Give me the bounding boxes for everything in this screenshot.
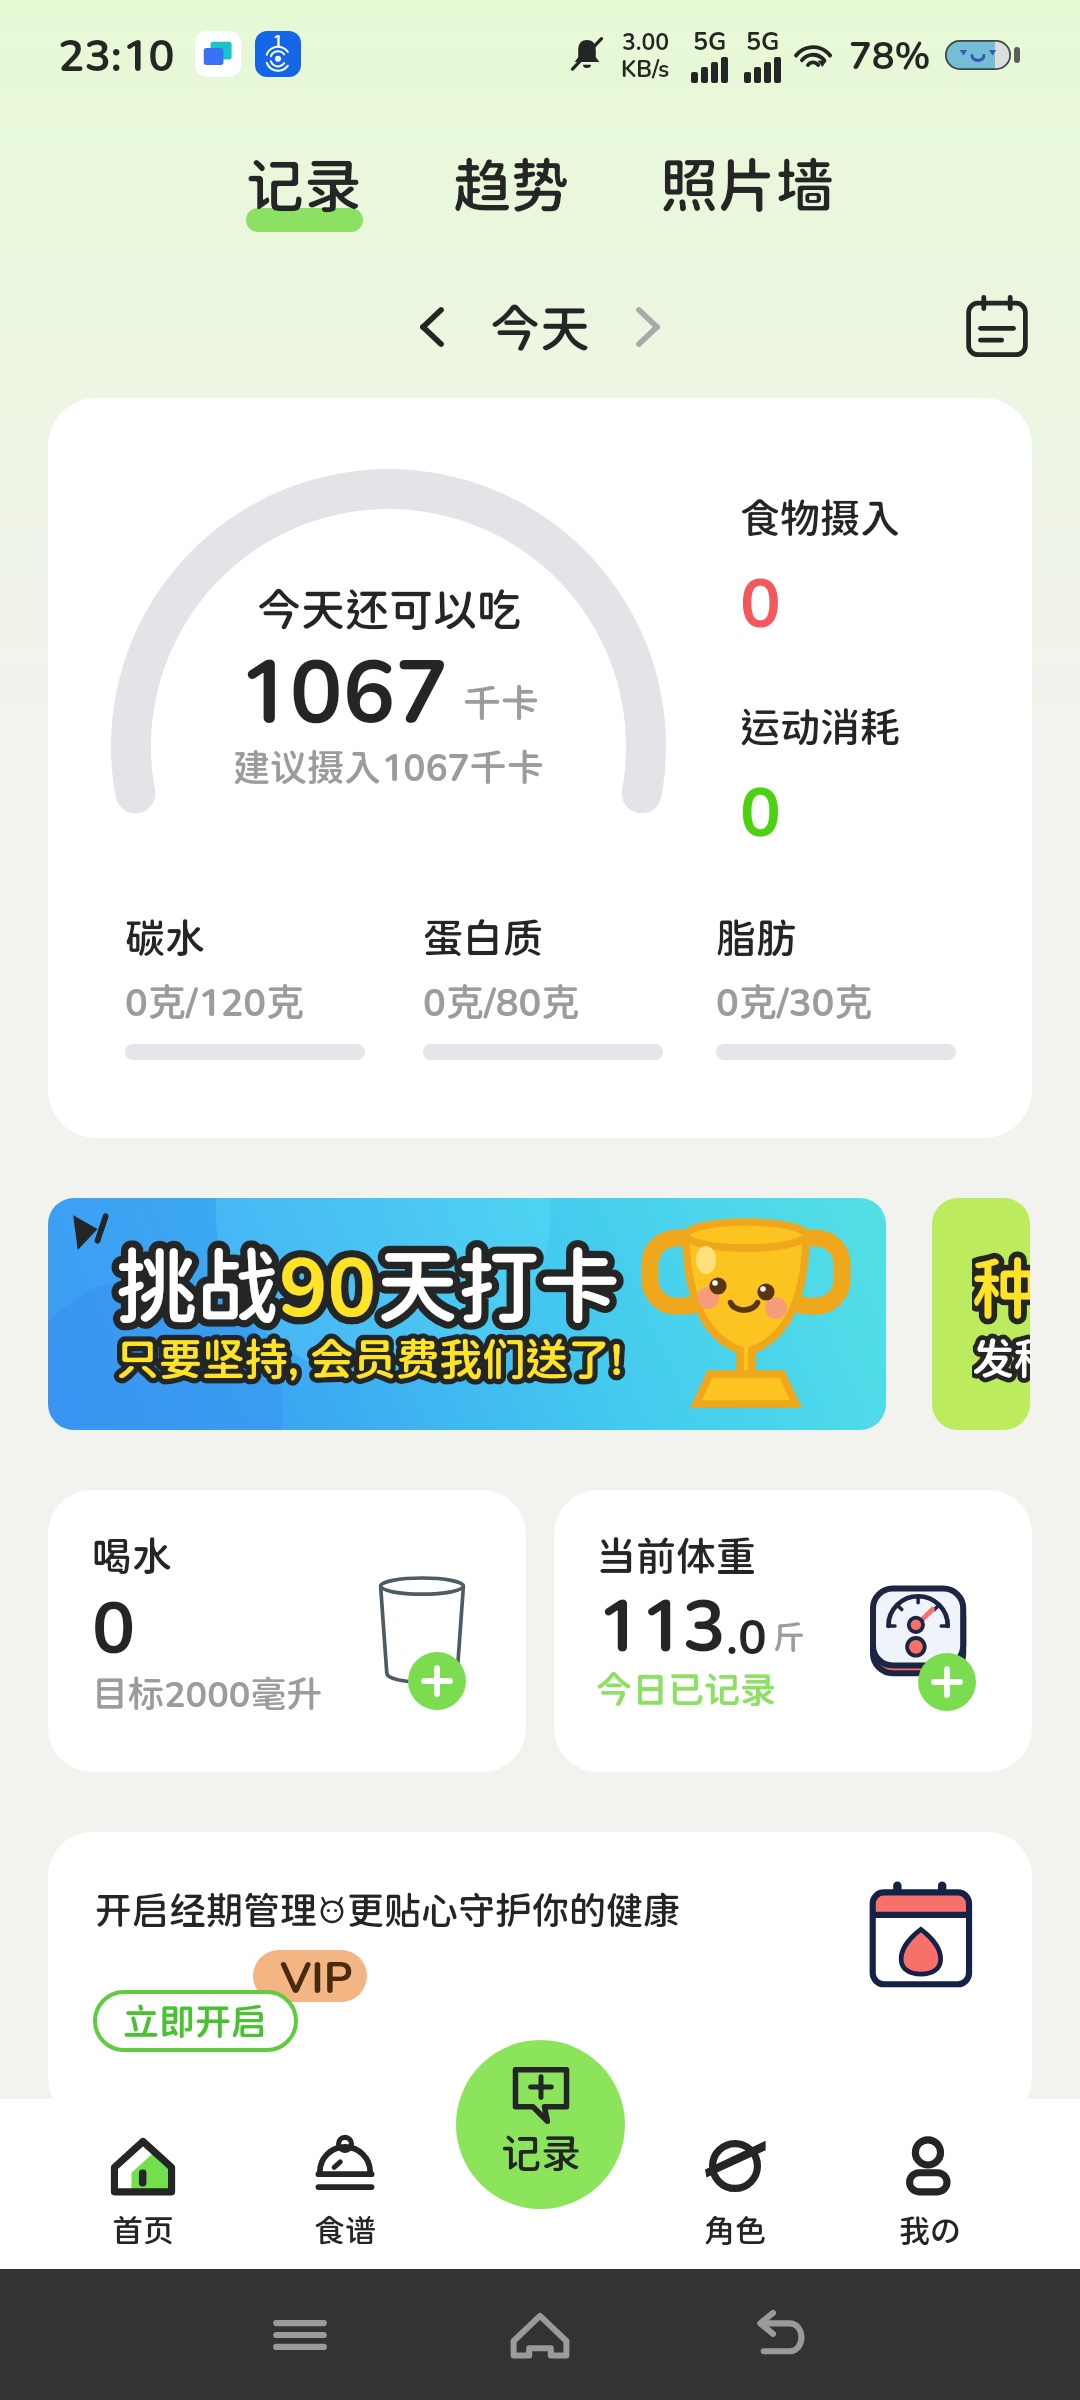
button[interactable]: 记录	[456, 2040, 625, 2209]
staticText: 0	[92, 1583, 136, 1668]
button[interactable]: Next day	[610, 290, 684, 364]
staticText: 运动消耗	[740, 703, 900, 750]
staticText: 挑战	[116, 1237, 279, 1333]
button[interactable]: 立即开启	[95, 1992, 296, 2050]
staticText: 目标2000毫升	[92, 1672, 323, 1714]
button[interactable]: 趋势	[442, 140, 581, 250]
staticText: 更贴心守护你的健康	[347, 1888, 680, 1932]
staticText: 当前体重	[596, 1532, 756, 1579]
staticText: 首页	[112, 2212, 174, 2249]
staticText: KB/s	[621, 55, 670, 82]
button[interactable]: Add	[918, 1653, 976, 1711]
staticText: 0	[740, 561, 781, 641]
staticText: 斤	[773, 1618, 806, 1656]
staticText: 今日已记录	[596, 1668, 777, 1710]
staticText: 90	[279, 1237, 377, 1333]
staticText: .0	[726, 1607, 767, 1664]
button[interactable]: Back	[732, 2287, 828, 2383]
staticText: 1	[273, 31, 283, 49]
button[interactable]: 首页	[73, 2126, 213, 2255]
staticText: 发种	[972, 1333, 1030, 1383]
button[interactable]: Previous day	[396, 290, 470, 364]
staticText: 我の	[899, 2212, 961, 2249]
staticText: 立即开启	[123, 2000, 268, 2042]
staticText: 角色	[704, 2212, 766, 2249]
staticText: 食物摄入	[740, 494, 900, 541]
staticText: 开启经期管理	[95, 1888, 317, 1932]
button[interactable]: 照片墙	[649, 140, 846, 250]
button[interactable]: 食谱	[275, 2126, 415, 2255]
staticText: 种	[972, 1249, 1030, 1327]
staticText: 天打卡	[377, 1237, 621, 1333]
staticText: 90	[279, 1237, 377, 1333]
staticText: 今天还可以吃	[257, 583, 521, 635]
staticText: 脂肪	[716, 914, 796, 961]
staticText: 建议摄入	[233, 745, 381, 789]
staticText: 只要坚持, 会员费我们送了!	[116, 1333, 623, 1384]
button[interactable]: Add	[408, 1652, 466, 1710]
button[interactable]: 今天	[490, 298, 590, 357]
staticText: 种	[972, 1249, 1030, 1327]
staticText: 碳水	[125, 914, 205, 961]
button[interactable]: Recents	[252, 2287, 348, 2383]
staticText: VIP	[280, 1950, 353, 2002]
button[interactable]: 当前体重	[554, 1490, 1032, 1772]
staticText: 5G	[746, 26, 780, 56]
button[interactable]: Home	[492, 2287, 588, 2383]
staticText: 0克/120克	[125, 979, 305, 1024]
staticText: 食谱	[314, 2212, 376, 2249]
staticText: 78%	[849, 32, 931, 77]
button[interactable]: 角色	[665, 2126, 805, 2255]
button[interactable]: Calendar	[956, 286, 1038, 368]
staticText: 记录	[501, 2129, 581, 2176]
staticText: 113	[596, 1581, 726, 1666]
staticText: 记录	[246, 151, 363, 219]
button[interactable]: 记录	[235, 140, 374, 250]
button[interactable]: 我の	[860, 2126, 1000, 2255]
staticText: 0克/30克	[716, 979, 873, 1024]
staticText: 发种	[972, 1333, 1030, 1383]
staticText: 趋势	[453, 151, 570, 219]
staticText: 喝水	[92, 1532, 172, 1579]
staticText: 千卡	[463, 680, 540, 725]
button[interactable]: 今天还可以吃	[48, 398, 1032, 1138]
button[interactable]: 喝水	[48, 1490, 526, 1772]
staticText: 0克/80克	[423, 979, 580, 1024]
staticText: 照片墙	[660, 151, 835, 219]
staticText: 蛋白质	[423, 914, 543, 961]
staticText: 0	[740, 770, 781, 850]
staticText: 23:10	[58, 28, 175, 80]
staticText: 1067	[237, 637, 449, 741]
button[interactable]: 种	[932, 1198, 1030, 1430]
button[interactable]: 挑战	[48, 1198, 886, 1430]
staticText: 5G	[693, 26, 727, 56]
button[interactable]: 开启经期管理	[48, 1832, 1032, 2122]
staticText: 挑战	[116, 1237, 279, 1333]
staticText: 1067千卡	[381, 745, 544, 789]
staticText: 天打卡	[377, 1237, 621, 1333]
staticText: 3.00	[622, 28, 670, 55]
staticText: 只要坚持, 会员费我们送了!	[116, 1333, 623, 1384]
